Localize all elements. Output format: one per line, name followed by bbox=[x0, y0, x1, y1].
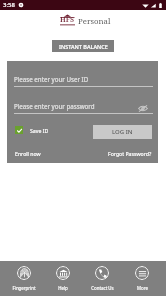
staticText: More bbox=[137, 285, 148, 291]
staticText: LOG IN bbox=[112, 128, 133, 136]
staticText: 3:58 bbox=[3, 1, 15, 9]
button[interactable]: Fingerprint bbox=[4, 261, 43, 296]
staticText: Contact Us bbox=[91, 285, 114, 291]
button[interactable]: More bbox=[122, 261, 162, 296]
staticText: Personal bbox=[78, 16, 111, 27]
button[interactable]: LOG IN bbox=[93, 125, 152, 139]
staticText: Save ID bbox=[30, 127, 49, 134]
button[interactable]: Forgot Password? bbox=[108, 150, 152, 157]
staticText: Please enter your password bbox=[14, 102, 95, 110]
button[interactable]: Show password bbox=[138, 105, 148, 112]
staticText: Please enter your User ID bbox=[14, 75, 89, 83]
button[interactable]: Save ID bbox=[15, 126, 49, 134]
button[interactable]: Enroll now bbox=[15, 150, 41, 157]
button[interactable]: Contact Us bbox=[82, 261, 122, 296]
staticText: Fingerprint bbox=[12, 285, 36, 291]
staticText: Help bbox=[58, 285, 68, 291]
button[interactable]: Help bbox=[43, 261, 82, 296]
staticText: HFS bbox=[60, 15, 75, 25]
staticText: INSTANT BALANCE bbox=[59, 43, 108, 50]
button[interactable]: INSTANT BALANCE bbox=[52, 40, 114, 52]
